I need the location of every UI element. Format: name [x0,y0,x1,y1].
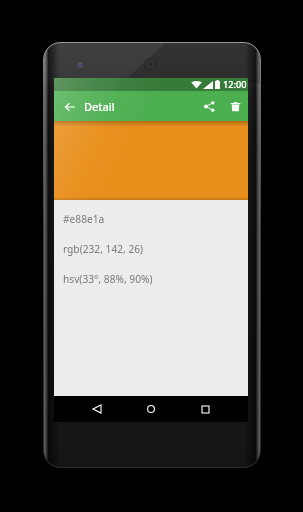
button[interactable]: rgb(232, 142, 26) [54,234,248,264]
button[interactable]: hsv(33°, 88%, 90%) [54,264,248,294]
staticText: 12:00 [223,78,247,91]
button[interactable]: Home [140,398,162,420]
button[interactable]: Share [198,95,221,118]
button[interactable]: Back [86,398,108,420]
staticText: #e88e1a [63,212,105,226]
button[interactable]: Delete [224,95,247,118]
staticText: Detail [84,99,115,114]
staticText: hsv(33°, 88%, 90%) [63,272,153,286]
button[interactable]: #e88e1a [54,204,248,234]
button[interactable]: Recents [194,398,216,420]
button[interactable]: Back [58,95,81,118]
staticText: rgb(232, 142, 26) [63,242,144,256]
